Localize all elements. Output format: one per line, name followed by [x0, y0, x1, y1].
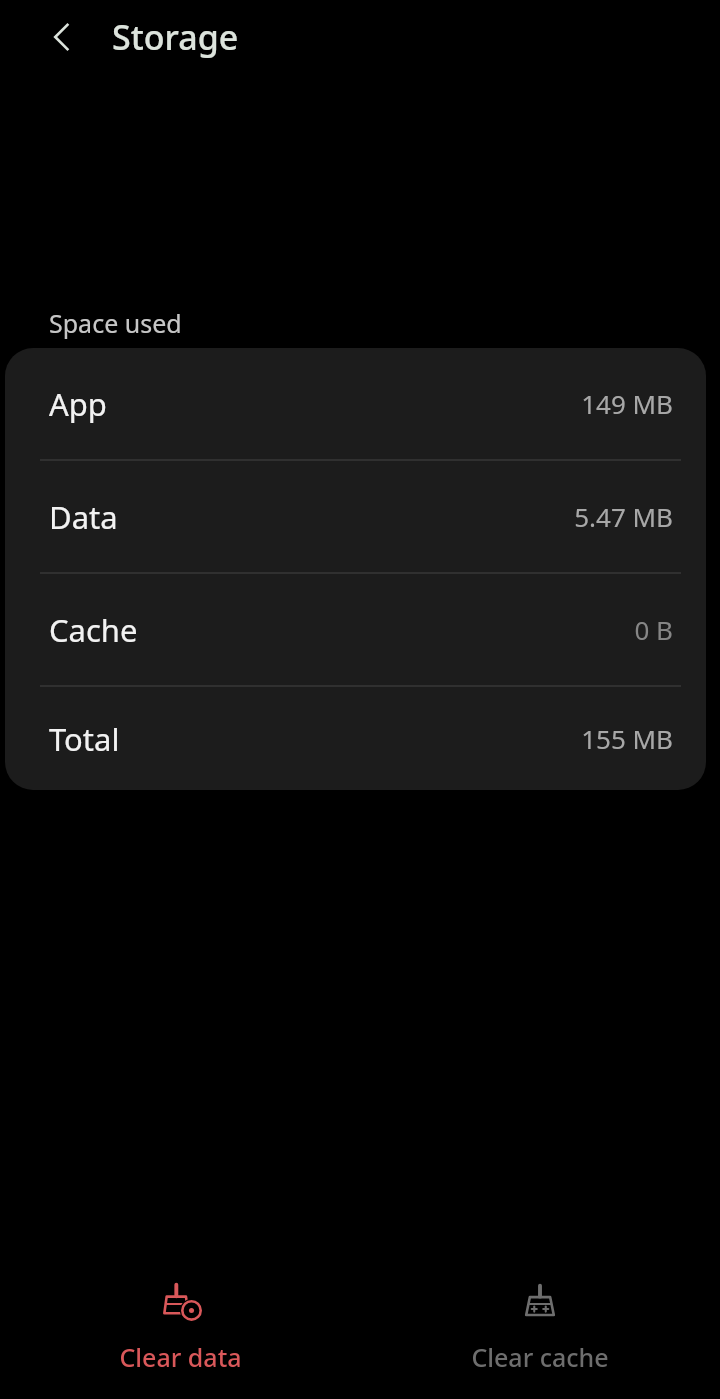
- button[interactable]: Total: [5, 687, 706, 790]
- button[interactable]: Data: [5, 461, 706, 572]
- staticText: Clear data: [119, 1340, 242, 1374]
- staticText: Total: [49, 718, 120, 760]
- button[interactable]: Back: [32, 7, 92, 67]
- staticText: Space used: [49, 306, 182, 340]
- staticText: App: [49, 383, 107, 425]
- staticText: 155 MB: [581, 721, 673, 756]
- staticText: 149 MB: [581, 386, 673, 421]
- staticText: Cache: [49, 609, 138, 651]
- button[interactable]: App: [5, 348, 706, 459]
- staticText: 5.47 MB: [574, 499, 673, 534]
- staticText: Clear cache: [471, 1340, 609, 1374]
- button[interactable]: Cache: [5, 574, 706, 685]
- staticText: Data: [49, 496, 118, 538]
- button[interactable]: Clear cache: [360, 1259, 720, 1399]
- staticText: Storage: [112, 14, 239, 60]
- button[interactable]: Clear data: [0, 1259, 360, 1399]
- staticText: 0 B: [634, 612, 673, 647]
